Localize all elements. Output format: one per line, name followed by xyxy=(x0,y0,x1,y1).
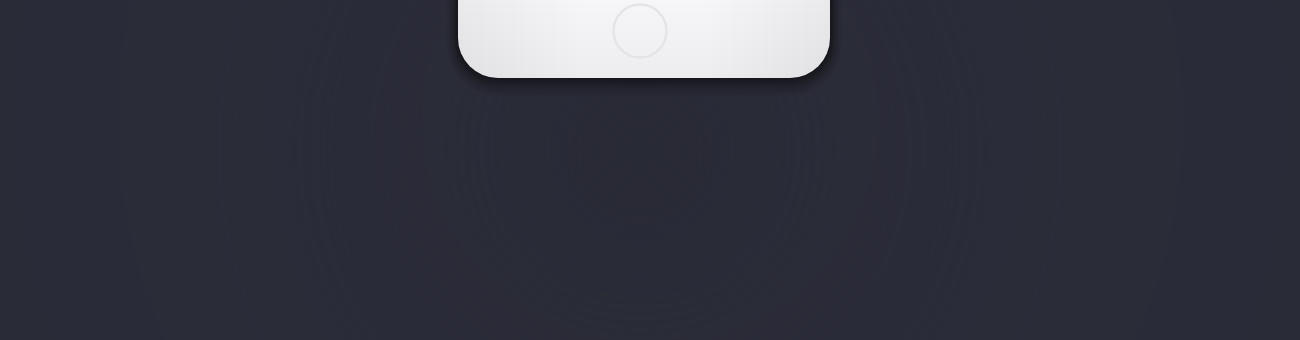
button[interactable]: Phone preview xyxy=(0,0,1300,340)
